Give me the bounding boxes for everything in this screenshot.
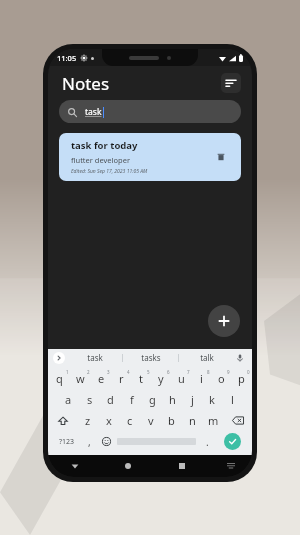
staticText: w — [76, 371, 85, 386]
staticText: 0 — [247, 369, 250, 375]
button[interactable]: task — [68, 349, 122, 366]
staticText: tasks — [141, 352, 161, 363]
button[interactable]: s — [79, 389, 100, 410]
button[interactable]: Enter — [224, 433, 241, 450]
staticText: 9 — [227, 369, 230, 375]
staticText: h — [169, 392, 176, 407]
button[interactable]: z — [77, 410, 98, 431]
button[interactable]: q — [49, 368, 70, 389]
button[interactable]: Shift — [49, 410, 77, 431]
staticText: g — [149, 392, 156, 407]
staticText: ?123 — [59, 437, 75, 447]
staticText: n — [189, 413, 196, 428]
button[interactable]: tasks — [123, 349, 178, 366]
button[interactable]: u — [171, 368, 191, 389]
staticText: , — [88, 435, 91, 449]
staticText: v — [148, 413, 154, 428]
staticText: 8 — [207, 369, 210, 375]
button[interactable]: x — [98, 410, 119, 431]
button[interactable]: a — [58, 389, 79, 410]
button[interactable]: Add note — [208, 305, 240, 337]
button[interactable]: i — [191, 368, 211, 389]
staticText: a — [65, 392, 72, 407]
staticText: task — [85, 106, 102, 118]
button[interactable]: p — [231, 368, 251, 389]
button[interactable]: ?123 — [52, 431, 81, 452]
staticText: Edited: Sun Sep 17, 2023 11:05 AM — [71, 168, 148, 175]
staticText: i — [200, 371, 203, 386]
staticText: 11:05 — [57, 53, 77, 63]
staticText: m — [208, 413, 219, 428]
staticText: e — [98, 371, 105, 386]
button[interactable]: Switch keyboard — [209, 455, 252, 477]
button[interactable]: Delete note — [213, 149, 229, 165]
staticText: 3 — [107, 369, 110, 375]
staticText: 5 — [147, 369, 150, 375]
button[interactable]: Emoji — [97, 431, 115, 452]
button[interactable]: Back — [48, 455, 101, 477]
staticText: d — [107, 392, 114, 407]
button[interactable]: o — [211, 368, 231, 389]
staticText: r — [119, 371, 124, 386]
button[interactable]: k — [202, 389, 222, 410]
staticText: t — [139, 371, 143, 386]
button[interactable]: . — [198, 431, 216, 452]
staticText: q — [56, 371, 63, 386]
button[interactable]: b — [161, 410, 182, 431]
button[interactable]: Recent apps — [155, 455, 209, 477]
staticText: z — [85, 413, 91, 428]
button[interactable]: Voice input — [234, 352, 246, 364]
button[interactable]: More suggestions — [53, 352, 65, 364]
staticText: task — [87, 352, 103, 363]
staticText: o — [218, 371, 225, 386]
button[interactable]: t — [131, 368, 151, 389]
button[interactable]: n — [182, 410, 203, 431]
button[interactable]: c — [119, 410, 140, 431]
staticText: . — [206, 435, 209, 449]
button[interactable]: task for today — [59, 133, 241, 181]
button[interactable]: , — [81, 431, 97, 452]
staticText: u — [178, 371, 185, 386]
button[interactable]: e — [91, 368, 111, 389]
staticText: l — [231, 392, 234, 407]
button[interactable]: Sort notes — [221, 73, 241, 93]
staticText: b — [168, 413, 175, 428]
button[interactable]: task — [59, 100, 241, 123]
button[interactable]: Home — [101, 455, 155, 477]
button[interactable]: g — [142, 389, 162, 410]
staticText: 2 — [87, 369, 90, 375]
button[interactable]: w — [70, 368, 91, 389]
staticText: s — [87, 392, 93, 407]
button[interactable]: r — [111, 368, 131, 389]
staticText: 4 — [127, 369, 130, 375]
button[interactable]: Backspace — [224, 410, 251, 431]
button[interactable]: talk — [179, 349, 234, 366]
staticText: task for today — [71, 139, 138, 152]
button[interactable]: v — [140, 410, 161, 431]
button[interactable]: h — [162, 389, 182, 410]
button[interactable]: m — [203, 410, 224, 431]
staticText: p — [238, 371, 245, 386]
staticText: f — [130, 392, 134, 407]
staticText: Notes — [62, 72, 110, 95]
button[interactable]: l — [222, 389, 242, 410]
staticText: x — [106, 413, 112, 428]
staticText: 1 — [66, 369, 69, 375]
staticText: y — [158, 371, 164, 386]
staticText: talk — [200, 352, 214, 363]
button[interactable]: d — [100, 389, 121, 410]
staticText: 6 — [167, 369, 170, 375]
staticText: j — [191, 392, 194, 407]
button[interactable]: y — [151, 368, 171, 389]
staticText: k — [209, 392, 215, 407]
staticText: flutter developer — [71, 155, 130, 165]
button[interactable]: j — [182, 389, 202, 410]
button[interactable]: f — [121, 389, 142, 410]
staticText: c — [127, 413, 133, 428]
staticText: 7 — [187, 369, 190, 375]
